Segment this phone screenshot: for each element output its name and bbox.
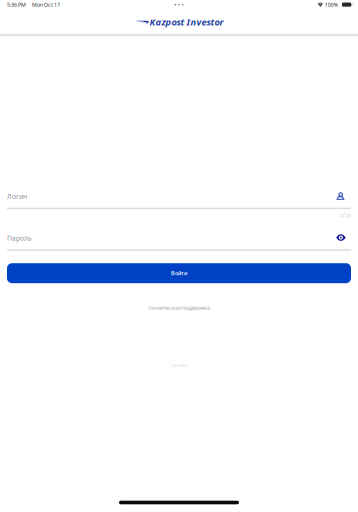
staticText: 5:36 PM <box>7 1 26 8</box>
button[interactable]: Show password <box>332 231 350 244</box>
staticText: Логин <box>7 192 27 201</box>
staticText: 2.3.3 (011) <box>170 363 187 368</box>
staticText: Техническая поддержка <box>148 304 210 311</box>
button[interactable]: Техническая поддержка <box>148 303 210 313</box>
staticText: 100% <box>325 1 338 8</box>
staticText: Mon Oct 17 <box>32 1 60 8</box>
staticText: 0/20 <box>340 212 351 219</box>
staticText: Войти <box>171 270 187 277</box>
staticText: Kazpost Investor <box>150 16 224 28</box>
button[interactable]: Select account <box>332 190 350 203</box>
button[interactable]: Войти <box>7 263 351 283</box>
staticText: Пароль <box>7 234 32 243</box>
